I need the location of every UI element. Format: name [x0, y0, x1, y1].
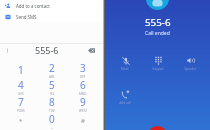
staticText: # — [81, 117, 85, 125]
staticText: 555-6 — [35, 44, 59, 56]
staticText: 0 — [49, 112, 55, 126]
staticText: Speaker — [184, 67, 197, 71]
button[interactable]: # — [67, 112, 98, 129]
button[interactable]: 7 — [5, 95, 36, 112]
button[interactable]: End call — [148, 126, 167, 130]
staticText: 8 — [49, 95, 55, 109]
staticText: + — [51, 126, 53, 129]
button[interactable]: 0 — [36, 112, 67, 129]
button[interactable]: Mute — [112, 56, 138, 71]
button[interactable]: 3 — [67, 61, 98, 78]
staticText: TUV — [49, 109, 55, 112]
staticText: 6 — [80, 78, 86, 92]
staticText: Send SMS — [16, 14, 37, 20]
staticText: PQRS — [17, 109, 25, 112]
staticText: Add to a contact — [16, 3, 50, 9]
staticText: Mute — [121, 67, 129, 71]
button[interactable]: Backspace — [79, 44, 103, 57]
staticText: Add call — [119, 101, 131, 105]
button[interactable]: Add call — [112, 90, 138, 105]
staticText: 5 — [49, 78, 55, 92]
staticText: 555-6 — [145, 16, 171, 29]
button[interactable]: Send SMS — [0, 11, 103, 22]
staticText: Call ended — [145, 30, 170, 37]
button[interactable]: More options — [0, 44, 14, 57]
button[interactable]: 5 — [36, 78, 67, 95]
staticText: 2 — [49, 61, 55, 75]
staticText: 7 — [18, 95, 24, 109]
button[interactable]: Speaker — [177, 56, 203, 71]
staticText: JKL — [50, 92, 55, 95]
staticText: MNO — [79, 92, 87, 95]
staticText: 9 — [80, 95, 86, 109]
button[interactable]: Keypad — [145, 56, 171, 71]
button[interactable]: * — [5, 112, 36, 129]
staticText: 4 — [18, 78, 24, 92]
staticText: 1 — [18, 63, 24, 77]
staticText: GHI — [18, 92, 24, 95]
button[interactable]: 1 — [5, 61, 36, 78]
button[interactable]: 9 — [67, 95, 98, 112]
staticText: * — [19, 117, 23, 125]
staticText: WXYZ — [79, 109, 87, 112]
staticText: Keypad — [152, 67, 164, 71]
button[interactable]: 8 — [36, 95, 67, 112]
staticText: 3 — [80, 61, 86, 75]
button[interactable]: 2 — [36, 61, 67, 78]
button[interactable]: 4 — [5, 78, 36, 95]
staticText: ABC — [49, 75, 55, 78]
button[interactable]: Add to a contact — [0, 0, 103, 11]
button[interactable]: 6 — [67, 78, 98, 95]
staticText: DEF — [80, 75, 86, 78]
